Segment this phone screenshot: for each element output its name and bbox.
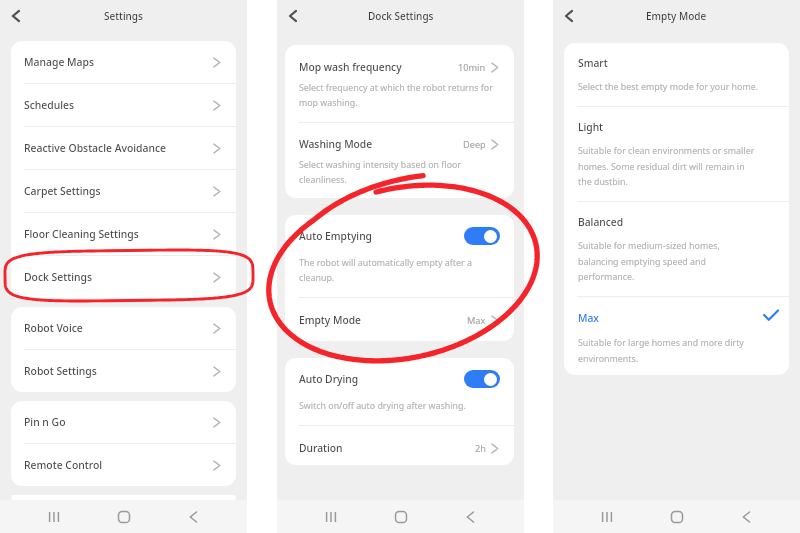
button[interactable]: Light: [564, 107, 789, 201]
button[interactable]: Remote Control: [11, 444, 236, 486]
button[interactable]: Back: [3, 3, 29, 29]
staticText: Suitable for large homes and more dirty …: [578, 337, 759, 365]
staticText: 10min: [458, 61, 486, 74]
button[interactable]: Smart: [564, 43, 789, 106]
staticText: Schedules: [24, 98, 75, 112]
staticText: Dock Settings: [368, 9, 434, 23]
button[interactable]: Back: [556, 3, 582, 29]
button[interactable]: Washing Mode: [285, 123, 514, 198]
staticText: Max: [467, 314, 486, 327]
staticText: The robot will automatically empty after…: [299, 257, 488, 284]
button[interactable]: Empty Mode: [285, 298, 514, 341]
staticText: Suitable for medium-sized homes, balanci…: [578, 240, 759, 283]
staticText: Suitable for clean environments or small…: [578, 145, 759, 188]
staticText: Settings: [104, 9, 143, 23]
staticText: Empty Mode: [646, 9, 707, 23]
staticText: Select frequency at which the robot retu…: [299, 82, 500, 109]
staticText: Light: [578, 120, 604, 134]
button[interactable]: Pin n Go: [11, 401, 236, 443]
button[interactable]: Toggle on: [464, 227, 500, 245]
staticText: Deep: [463, 138, 486, 151]
button[interactable]: Back: [731, 502, 761, 532]
staticText: Washing Mode: [299, 137, 373, 151]
staticText: Max: [578, 311, 599, 325]
staticText: Auto Drying: [299, 372, 359, 386]
staticText: Dock Settings: [24, 270, 93, 284]
button[interactable]: Reactive Obstacle Avoidance: [11, 127, 236, 169]
button[interactable]: Balanced: [564, 202, 789, 296]
staticText: 2h: [475, 442, 486, 455]
staticText: Empty Mode: [299, 313, 361, 327]
staticText: Remote Control: [24, 458, 103, 472]
button[interactable]: Recents: [316, 502, 346, 532]
button[interactable]: Robot Settings: [11, 350, 236, 392]
button[interactable]: Auto Emptying: [285, 215, 514, 297]
staticText: Robot Settings: [24, 364, 97, 378]
button[interactable]: Back: [455, 502, 485, 532]
staticText: Select washing intensity based on floor …: [299, 159, 472, 186]
button[interactable]: Back: [280, 3, 306, 29]
button[interactable]: Floor Cleaning Settings: [11, 213, 236, 255]
button[interactable]: Schedules: [11, 84, 236, 126]
button[interactable]: Mop wash frequency: [285, 45, 514, 122]
button[interactable]: Back: [178, 502, 208, 532]
staticText: Auto Emptying: [299, 229, 372, 243]
button[interactable]: Manage Maps: [11, 41, 236, 83]
staticText: Manage Maps: [24, 55, 95, 69]
button[interactable]: Home: [386, 502, 416, 532]
staticText: Mop wash frequency: [299, 60, 402, 74]
staticText: Smart: [578, 56, 608, 70]
staticText: Switch on/off auto drying after washing.: [299, 400, 466, 412]
staticText: Select the best empty mode for your home…: [578, 81, 759, 93]
staticText: Carpet Settings: [24, 184, 101, 198]
button[interactable]: Robot Voice: [11, 307, 236, 349]
button[interactable]: Home: [109, 502, 139, 532]
staticText: Reactive Obstacle Avoidance: [24, 141, 167, 155]
staticText: Floor Cleaning Settings: [24, 227, 139, 241]
button[interactable]: Dock Settings: [11, 256, 236, 298]
button[interactable]: Auto Drying: [285, 358, 514, 425]
staticText: Robot Voice: [24, 321, 83, 335]
button[interactable]: Carpet Settings: [11, 170, 236, 212]
button[interactable]: Toggle on: [464, 370, 500, 388]
button[interactable]: Duration: [285, 426, 514, 465]
button[interactable]: Max: [564, 297, 789, 375]
button[interactable]: Recents: [592, 502, 622, 532]
button[interactable]: Home: [662, 502, 692, 532]
staticText: Balanced: [578, 215, 624, 229]
button[interactable]: Recents: [39, 502, 69, 532]
staticText: Duration: [299, 441, 343, 455]
staticText: Pin n Go: [24, 415, 66, 429]
